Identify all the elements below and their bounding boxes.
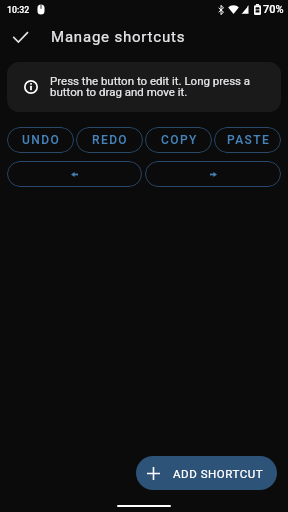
button[interactable]: ADD SHORTCUT (136, 456, 277, 490)
button[interactable]: COPY (145, 127, 212, 153)
button[interactable]: REDO (76, 127, 143, 153)
staticText: UNDO (22, 133, 61, 147)
staticText: REDO (92, 133, 129, 147)
staticText: Manage shortcuts (51, 28, 186, 46)
button[interactable]: Move right (145, 161, 281, 187)
staticText: 10:32 (7, 5, 30, 15)
staticText: Press the button to edit it. Long press … (50, 74, 251, 99)
staticText: 70% (263, 3, 284, 16)
button[interactable]: Done (0, 19, 40, 55)
staticText: PASTE (227, 133, 271, 147)
button[interactable]: UNDO (7, 127, 74, 153)
button[interactable]: PASTE (214, 127, 281, 153)
button[interactable]: Move left (7, 161, 142, 187)
staticText: ADD SHORTCUT (173, 467, 264, 480)
staticText: COPY (161, 133, 198, 147)
